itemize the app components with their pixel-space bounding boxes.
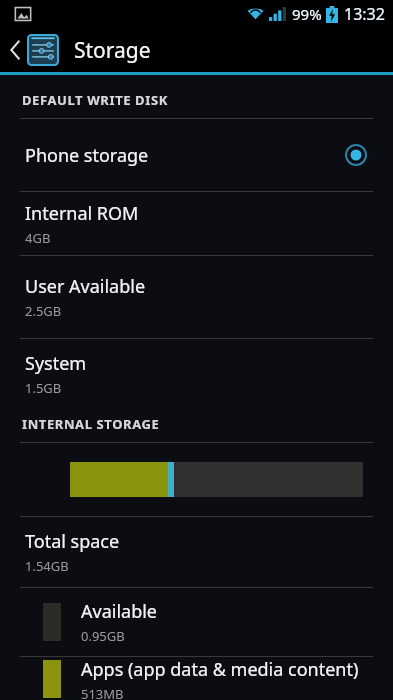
staticText: 0.95GB [81,627,125,645]
staticText: System [25,351,87,376]
staticText: Storage [74,36,151,65]
staticText: 13:32 [344,3,385,25]
staticText: DEFAULT WRITE DISK [22,91,168,109]
staticText: 4GB [25,229,51,247]
button[interactable]: User Available [0,256,393,338]
staticText: 99% [292,4,322,24]
staticText: Available [81,599,157,624]
staticText: Phone storage [25,143,149,168]
staticText: Apps (app data & media content) [81,657,359,682]
button[interactable]: System [0,339,393,409]
button[interactable]: Total space [0,517,393,587]
button[interactable]: Phone storage selected [333,132,379,178]
staticText: Total space [25,529,120,554]
staticText: 1.54GB [25,557,69,575]
button[interactable]: Internal ROM [0,192,393,255]
button[interactable]: Navigate up [0,28,64,72]
staticText: Internal ROM [25,201,139,226]
button[interactable]: Apps (app data & media content) [0,657,393,700]
staticText: 2.5GB [25,302,62,320]
staticText: 513MB [81,685,124,700]
staticText: 1.5GB [25,379,62,397]
staticText: INTERNAL STORAGE [22,415,160,433]
button[interactable]: Available [0,588,393,656]
button[interactable]: Phone storage [0,119,393,191]
staticText: User Available [25,274,146,299]
